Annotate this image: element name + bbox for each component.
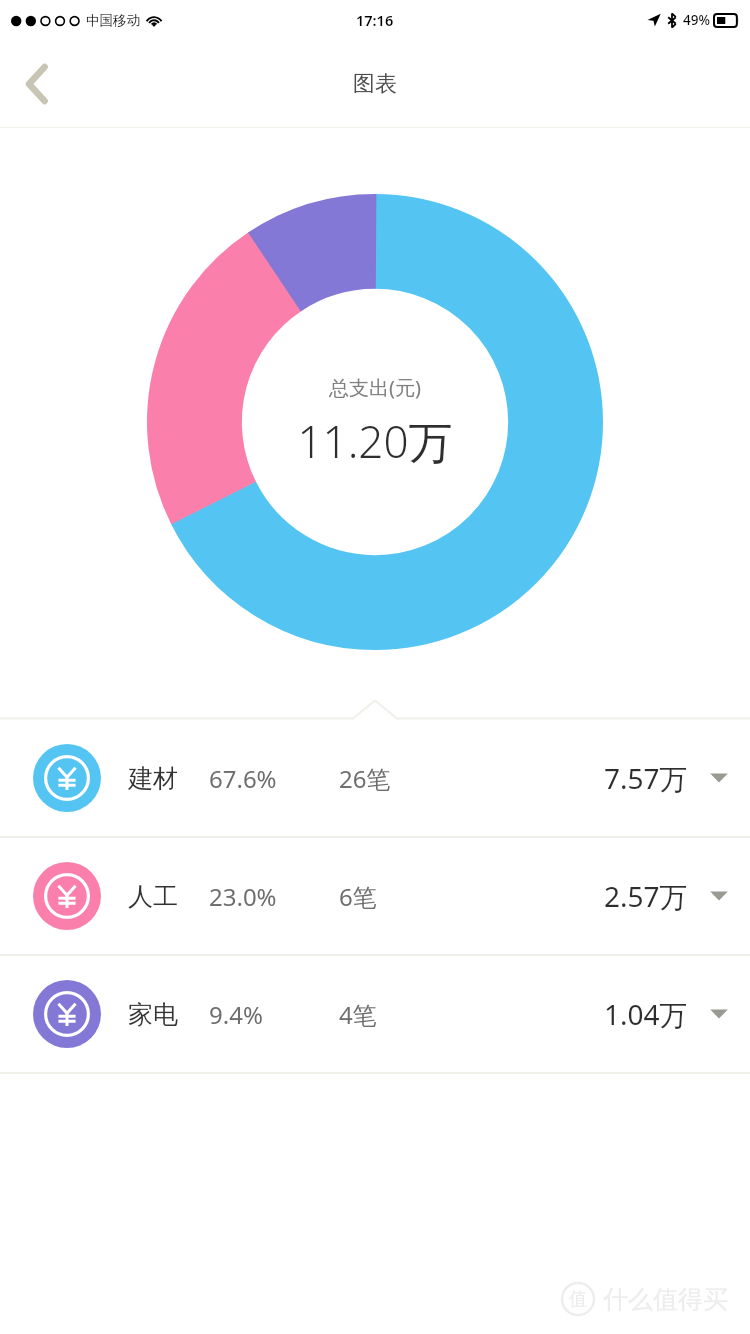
staticText: 值 xyxy=(569,1288,587,1311)
staticText: 23.0% xyxy=(209,880,277,913)
staticText: 9.4% xyxy=(209,998,263,1031)
staticText: 总支出(元) xyxy=(329,374,421,401)
staticText: 中国移动 xyxy=(86,12,140,29)
staticText: 图表 xyxy=(353,70,397,98)
button[interactable]: 建材 xyxy=(0,720,750,836)
button[interactable]: 家电 xyxy=(0,956,750,1072)
staticText: 人工 xyxy=(128,881,178,912)
staticText: 2.57万 xyxy=(604,877,688,915)
staticText: 49% xyxy=(683,11,710,29)
staticText: 建材 xyxy=(128,763,178,794)
staticText: 26笔 xyxy=(339,762,391,795)
staticText: 1.04万 xyxy=(604,995,688,1033)
staticText: 家电 xyxy=(128,999,178,1030)
button[interactable]: Back xyxy=(8,55,66,113)
staticText: 6笔 xyxy=(339,880,377,913)
staticText: 什么值得买 xyxy=(603,1284,728,1315)
staticText: 17:16 xyxy=(356,10,394,30)
staticText: 11.20万 xyxy=(297,411,453,471)
staticText: 67.6% xyxy=(209,762,277,795)
staticText: 7.57万 xyxy=(604,759,688,797)
staticText: 4笔 xyxy=(339,998,377,1031)
button[interactable]: 人工 xyxy=(0,838,750,954)
